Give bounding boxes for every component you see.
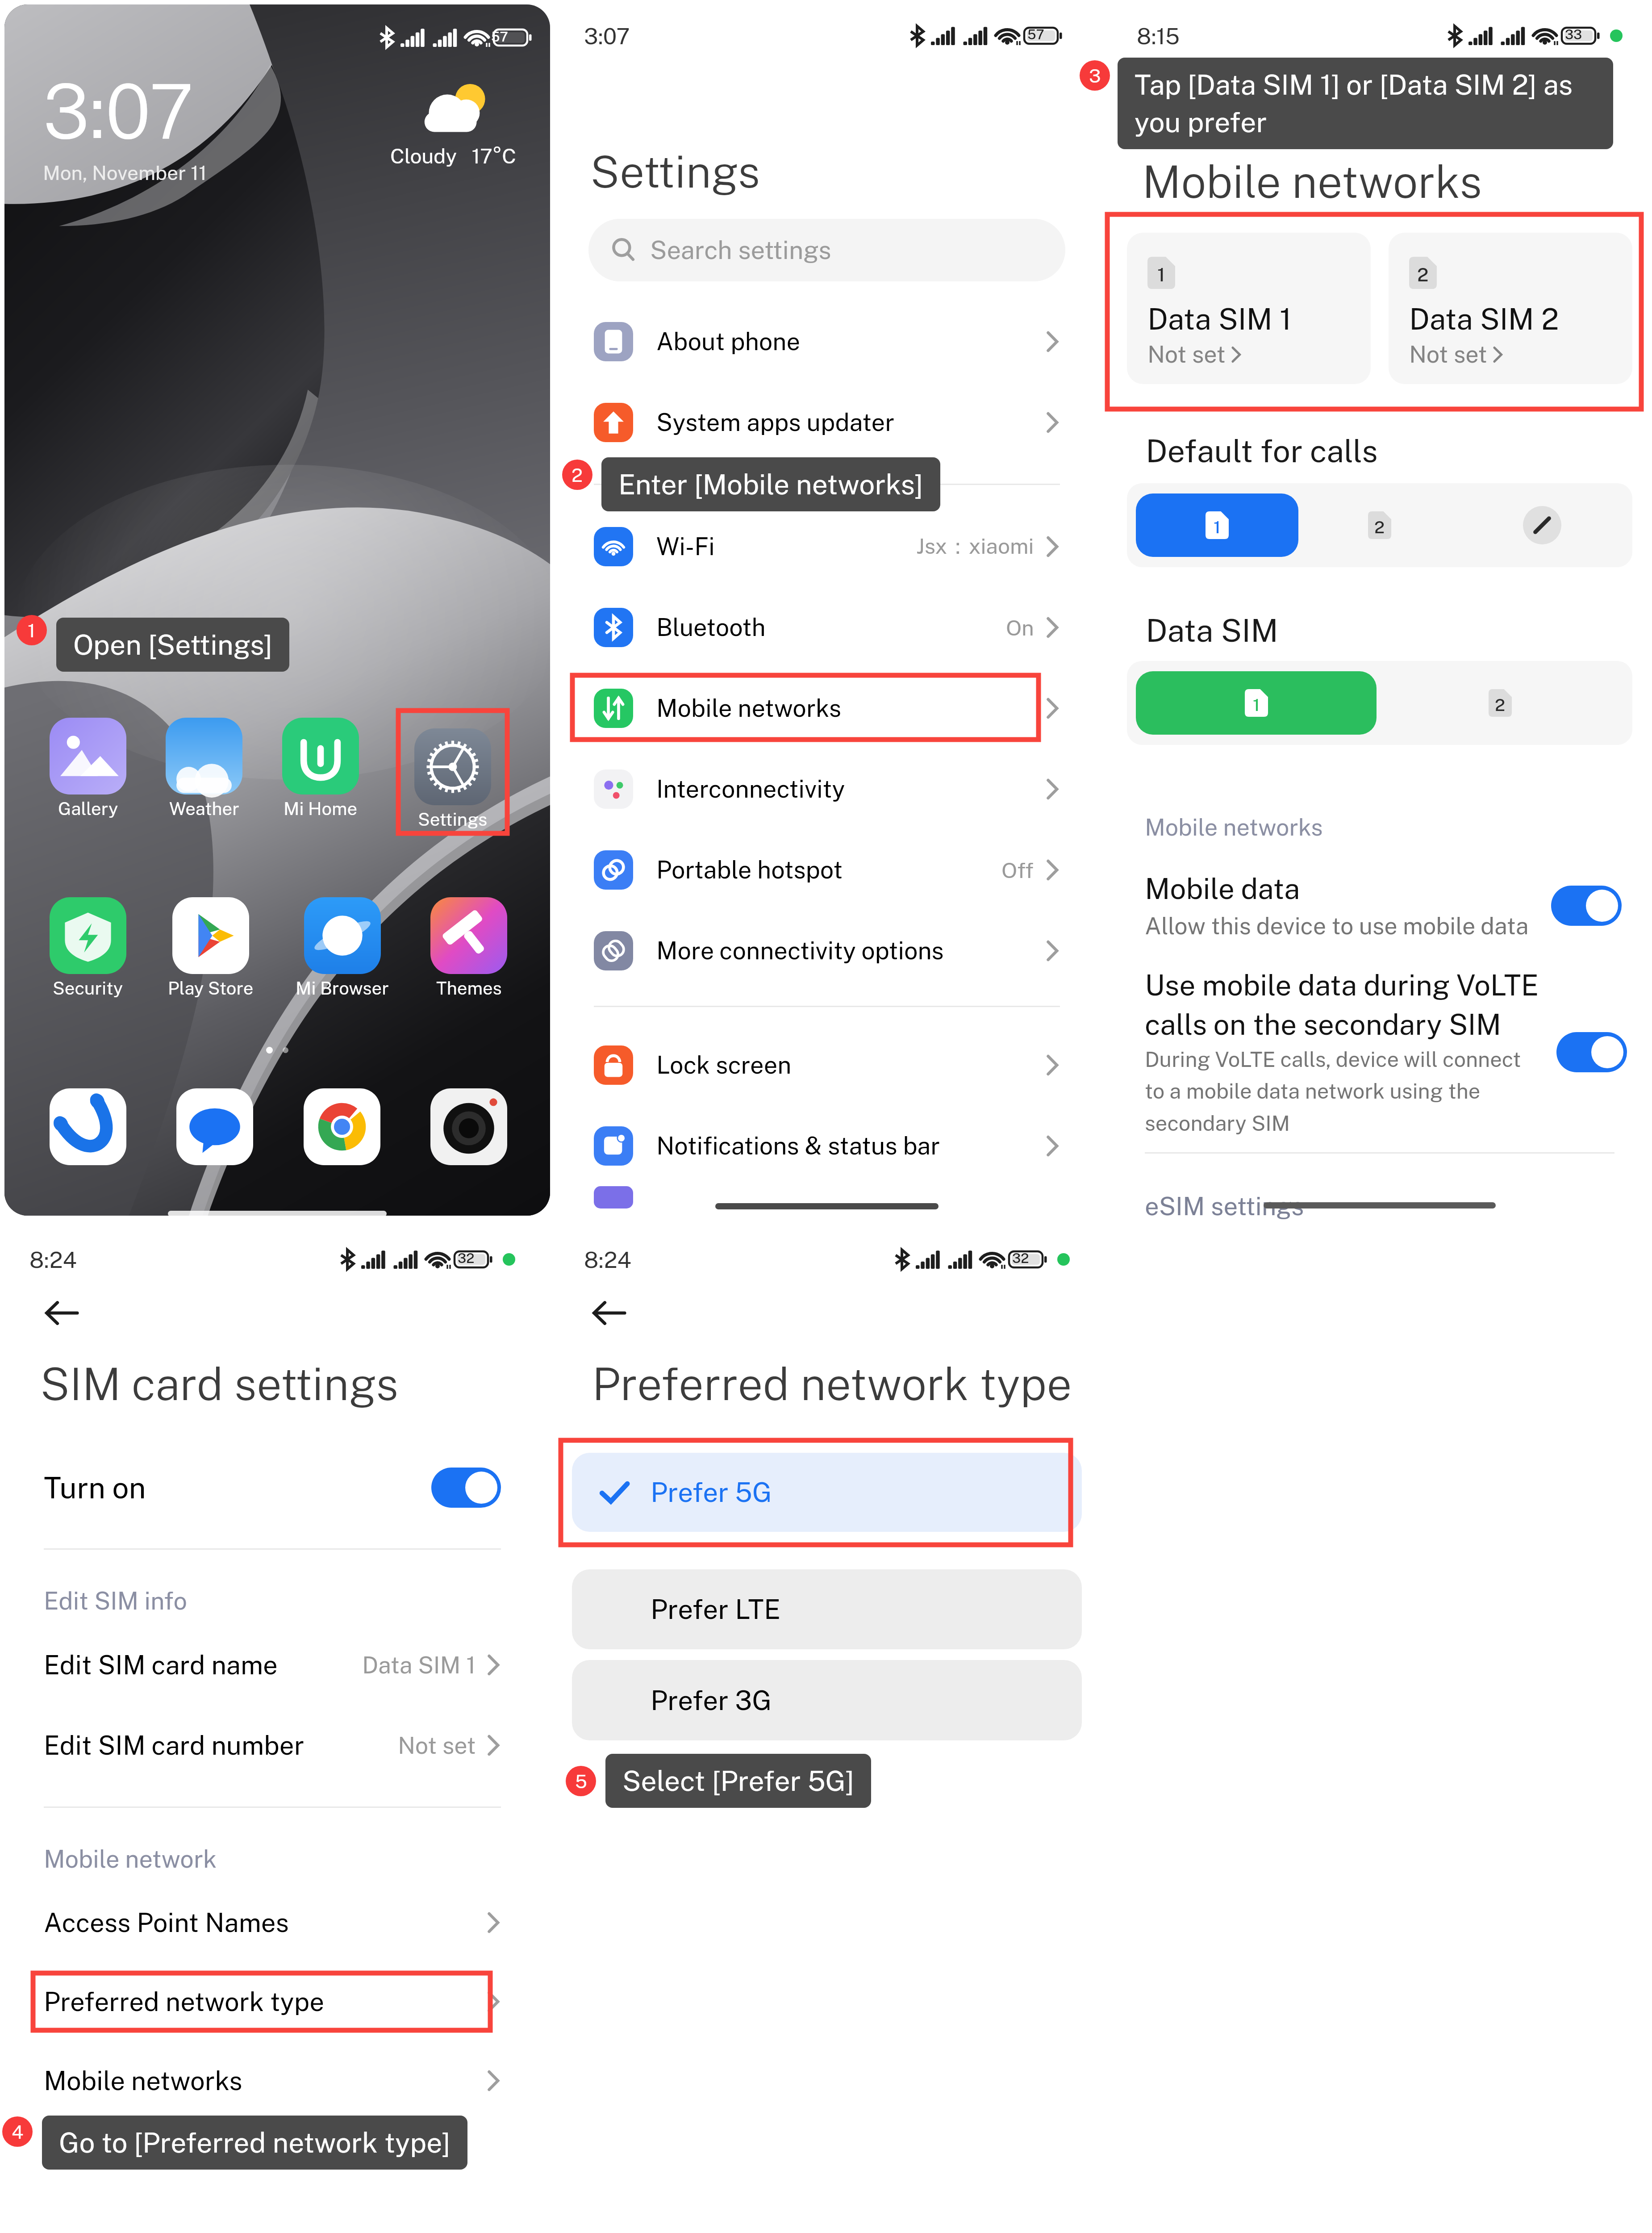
button[interactable]: Play Store bbox=[168, 897, 254, 999]
button[interactable]: Mobile data bbox=[1145, 872, 1622, 940]
button[interactable]: Interconnectivity bbox=[594, 749, 1060, 829]
staticText: Open [Settings] bbox=[73, 628, 272, 661]
button[interactable]: Turn on bbox=[44, 1447, 501, 1528]
button[interactable]: Bluetooth bbox=[594, 587, 1060, 668]
staticText: Data SIM 2 bbox=[1409, 301, 1559, 336]
staticText: Prefer 3G bbox=[651, 1685, 772, 1716]
button[interactable]: Edit SIM card number bbox=[44, 1705, 501, 1786]
button[interactable]: Use mobile data during VoLTE calls on th… bbox=[1145, 968, 1627, 1136]
button[interactable]: 1 bbox=[1136, 493, 1298, 557]
staticText: Mobile networks bbox=[1142, 155, 1482, 208]
button[interactable]: Back bbox=[1135, 63, 1189, 116]
staticText: Edit SIM card name bbox=[44, 1650, 278, 1680]
staticText: 1 bbox=[1253, 695, 1260, 715]
staticText: 8:24 bbox=[584, 1246, 631, 1273]
button[interactable]: Settings bbox=[414, 728, 491, 830]
staticText: 5 bbox=[575, 1770, 587, 1792]
button[interactable]: Mi Home bbox=[282, 718, 359, 819]
staticText: Themes bbox=[436, 978, 502, 999]
button[interactable]: Access Point Names bbox=[44, 1883, 501, 1962]
button[interactable]: Mobile networks bbox=[594, 668, 1060, 749]
staticText: System apps updater bbox=[656, 408, 895, 436]
button[interactable]: Portable hotspot bbox=[594, 829, 1060, 910]
staticText: During VoLTE calls, device will connect … bbox=[1145, 1047, 1521, 1136]
staticText: 2 bbox=[1417, 263, 1429, 285]
staticText: Prefer 5G bbox=[651, 1476, 772, 1508]
staticText: 3 bbox=[1089, 65, 1101, 87]
staticText: 8:15 bbox=[1137, 23, 1180, 49]
button[interactable]: Weather bbox=[166, 718, 242, 819]
staticText: Select [Prefer 5G] bbox=[622, 1765, 854, 1797]
button[interactable]: Lock screen bbox=[594, 1025, 1060, 1105]
button[interactable]: 2 bbox=[1377, 671, 1623, 735]
button[interactable]: System apps updater bbox=[594, 382, 1060, 463]
button[interactable] bbox=[1556, 1032, 1627, 1072]
staticText: Data SIM 1 bbox=[362, 1652, 476, 1679]
staticText: Cloudy 17°C bbox=[390, 144, 516, 168]
staticText: 32 bbox=[458, 1250, 475, 1266]
staticText: Bluetooth bbox=[656, 613, 766, 641]
staticText: Weather bbox=[169, 798, 239, 819]
button[interactable]: Chrome bbox=[304, 1088, 380, 1165]
button[interactable]: Notifications & status bar bbox=[594, 1105, 1060, 1186]
button[interactable]: Wi-Fi bbox=[594, 506, 1060, 587]
staticText: Settings bbox=[590, 146, 760, 197]
button[interactable]: Phone bbox=[50, 1088, 126, 1165]
staticText: SIM card settings bbox=[40, 1358, 398, 1410]
button[interactable]: 1 bbox=[1127, 233, 1371, 384]
staticText: Off bbox=[1001, 857, 1034, 882]
staticText: 57 bbox=[491, 29, 508, 44]
staticText: eSIM settings bbox=[1145, 1192, 1304, 1221]
button[interactable] bbox=[431, 1468, 501, 1508]
staticText: 32 bbox=[1012, 1250, 1029, 1266]
staticText: Default for calls bbox=[1146, 432, 1378, 469]
staticText: Use mobile data during VoLTE calls on th… bbox=[1145, 968, 1539, 1041]
staticText: Security bbox=[53, 978, 123, 999]
staticText: Notifications & status bar bbox=[656, 1132, 940, 1160]
staticText: 1 bbox=[1157, 263, 1165, 285]
button[interactable]: Mobile networks bbox=[44, 2041, 501, 2120]
staticText: Not set bbox=[1409, 341, 1487, 368]
staticText: Preferred network type bbox=[44, 1986, 325, 2017]
button[interactable]: Security bbox=[50, 897, 126, 999]
button[interactable]: Edit bbox=[1523, 506, 1561, 544]
staticText: Play Store bbox=[168, 978, 254, 999]
button[interactable]: Camera bbox=[430, 1088, 507, 1165]
button[interactable]: Messages bbox=[176, 1088, 253, 1165]
button[interactable]: Search settings bbox=[588, 219, 1065, 281]
staticText: 4 bbox=[12, 2121, 24, 2143]
staticText: 2 bbox=[572, 464, 583, 486]
button[interactable]: Prefer 3G bbox=[572, 1660, 1082, 1740]
staticText: Mi Browser bbox=[296, 978, 389, 999]
staticText: Jsx：xiaomi bbox=[916, 533, 1034, 560]
button[interactable]: 2 bbox=[1298, 493, 1461, 557]
button[interactable]: Prefer LTE bbox=[572, 1569, 1082, 1649]
staticText: Mobile network bbox=[44, 1845, 217, 1873]
button[interactable]: 2 bbox=[1389, 233, 1632, 384]
button[interactable]: Preferred network type bbox=[44, 1962, 501, 2041]
button[interactable]: Back bbox=[35, 1286, 88, 1340]
button[interactable]: 1 bbox=[1136, 671, 1377, 735]
staticText: 1 bbox=[1214, 517, 1221, 537]
staticText: Interconnectivity bbox=[656, 775, 845, 803]
button[interactable]: Mi Browser bbox=[296, 897, 389, 999]
button[interactable]: More connectivity options bbox=[594, 910, 1060, 991]
staticText: Not set bbox=[1147, 341, 1226, 368]
button[interactable]: Prefer 5G bbox=[572, 1453, 1082, 1532]
staticText: About phone bbox=[656, 327, 801, 355]
staticText: Turn on bbox=[44, 1470, 146, 1505]
staticText: Edit SIM info bbox=[44, 1587, 187, 1615]
staticText: Gallery bbox=[58, 798, 118, 819]
staticText: Go to [Preferred network type] bbox=[59, 2126, 451, 2159]
staticText: Prefer LTE bbox=[651, 1593, 781, 1625]
button[interactable]: Gallery bbox=[50, 718, 126, 819]
staticText: Mobile networks bbox=[44, 2066, 242, 2096]
staticText: On bbox=[1006, 615, 1034, 640]
button[interactable] bbox=[1551, 886, 1622, 926]
button[interactable]: Themes bbox=[430, 897, 507, 999]
button[interactable]: Edit SIM card name bbox=[44, 1625, 501, 1705]
button[interactable]: Back bbox=[582, 1286, 636, 1340]
button[interactable]: About phone bbox=[594, 301, 1060, 382]
staticText: 3:07 bbox=[584, 23, 630, 49]
staticText: Mobile networks bbox=[1145, 814, 1323, 841]
